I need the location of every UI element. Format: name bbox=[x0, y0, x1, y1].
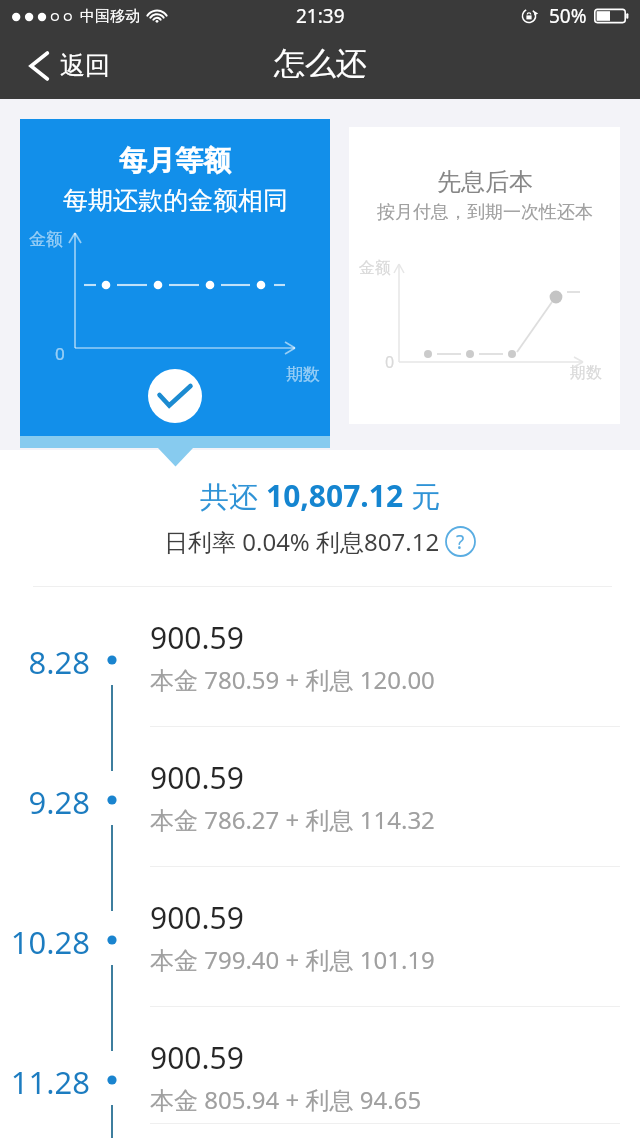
staticText: 900.59 bbox=[150, 617, 244, 658]
button[interactable]: 每月等额 bbox=[20, 119, 330, 436]
button[interactable]: 10.28 bbox=[0, 881, 640, 1021]
staticText: 金额 bbox=[359, 258, 391, 278]
staticText: 900.59 bbox=[150, 1037, 244, 1078]
staticText: 每月等额 bbox=[119, 143, 231, 178]
staticText: 本金 799.40 + 利息 101.19 bbox=[150, 943, 435, 976]
button[interactable]: 11.28 bbox=[0, 1021, 640, 1138]
staticText: 10,807.12 bbox=[266, 475, 404, 516]
staticText: 900.59 bbox=[150, 757, 244, 798]
staticText: 本金 805.94 + 利息 94.65 bbox=[150, 1083, 422, 1116]
staticText: 50% bbox=[549, 3, 587, 29]
staticText: 金额 bbox=[29, 229, 63, 250]
button[interactable]: 8.28 bbox=[0, 601, 640, 741]
button[interactable]: 先息后本 bbox=[349, 127, 620, 424]
staticText: 10.28 bbox=[0, 921, 90, 963]
staticText: 0 bbox=[385, 351, 395, 373]
staticText: 期数 bbox=[286, 364, 320, 385]
staticText: 期数 bbox=[570, 363, 602, 383]
staticText: 21:39 bbox=[296, 3, 345, 29]
staticText: 中国移动 bbox=[80, 7, 140, 26]
staticText: 11.28 bbox=[0, 1061, 90, 1103]
staticText: 怎么还 bbox=[274, 44, 367, 83]
staticText: ? bbox=[456, 529, 465, 555]
staticText: 返回 bbox=[60, 50, 110, 81]
staticText: 按月付息，到期一次性还本 bbox=[377, 201, 593, 224]
staticText: 共还 bbox=[200, 476, 266, 516]
button[interactable]: 帮助 bbox=[445, 526, 476, 557]
staticText: 8.28 bbox=[0, 641, 90, 683]
staticText: 900.59 bbox=[150, 897, 244, 938]
staticText: 本金 780.59 + 利息 120.00 bbox=[150, 663, 435, 696]
staticText: 日利率 0.04% 利息807.12 bbox=[164, 525, 440, 558]
staticText: 本金 786.27 + 利息 114.32 bbox=[150, 803, 435, 836]
staticText: 9.28 bbox=[0, 781, 90, 823]
staticText: 元 bbox=[404, 476, 441, 516]
button[interactable]: 9.28 bbox=[0, 741, 640, 881]
staticText: 先息后本 bbox=[437, 167, 533, 197]
staticText: 0 bbox=[55, 342, 65, 365]
button[interactable]: 返回 bbox=[0, 44, 126, 87]
staticText: 每期还款的金额相同 bbox=[63, 185, 288, 216]
